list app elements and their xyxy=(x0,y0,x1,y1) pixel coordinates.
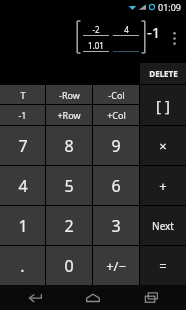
button[interactable]: -Row xyxy=(46,85,92,104)
staticText: -Row xyxy=(59,89,80,101)
button[interactable]: +/− xyxy=(93,246,139,285)
staticText: -Col xyxy=(108,89,125,101)
button[interactable]: 9 xyxy=(93,126,139,165)
staticText: 0 xyxy=(64,255,74,277)
staticText: T xyxy=(20,89,26,101)
staticText: 1 xyxy=(18,215,28,237)
staticText: 6 xyxy=(111,175,121,197)
button[interactable]: = xyxy=(140,246,186,285)
button[interactable]: 4 xyxy=(0,166,45,205)
staticText: +Row xyxy=(57,109,81,121)
button[interactable]: -Col xyxy=(93,85,139,104)
button[interactable]: 1.01 xyxy=(83,39,109,51)
staticText: 7 xyxy=(18,135,28,157)
staticText: -2 xyxy=(92,24,100,35)
button[interactable]: -2 xyxy=(83,23,109,35)
button[interactable]: 1 xyxy=(0,206,45,245)
staticText: 1.01 xyxy=(88,40,104,51)
button[interactable]: × xyxy=(140,126,186,165)
button[interactable]: More options xyxy=(166,23,182,53)
button[interactable]: 2 xyxy=(46,206,92,245)
button[interactable]: Next xyxy=(140,206,186,245)
button[interactable]: Recent apps xyxy=(128,285,174,310)
button[interactable]: . xyxy=(0,246,45,285)
button[interactable]: T xyxy=(0,85,45,104)
staticText: Next xyxy=(152,219,174,233)
staticText: +Col xyxy=(107,109,126,121)
button[interactable]: 6 xyxy=(93,166,139,205)
button[interactable]: Back xyxy=(12,285,58,310)
staticText: 9 xyxy=(111,135,121,157)
button[interactable]: Home xyxy=(70,285,116,310)
staticText: +/− xyxy=(106,257,126,275)
staticText: 5 xyxy=(64,175,74,197)
staticText: . xyxy=(20,255,25,277)
staticText: = xyxy=(159,257,167,275)
staticText: DELETE xyxy=(149,68,178,79)
staticText: 01:09 xyxy=(158,1,182,13)
button[interactable]: DELETE xyxy=(140,63,186,84)
button[interactable]: 8 xyxy=(46,126,92,165)
button[interactable]: 5 xyxy=(46,166,92,205)
staticText: + xyxy=(159,177,167,195)
staticText: 2 xyxy=(64,215,74,237)
staticText: -1 xyxy=(147,22,161,42)
button[interactable]: +Col xyxy=(93,105,139,125)
staticText: -1 xyxy=(18,109,27,121)
button[interactable]: 7 xyxy=(0,126,45,165)
staticText: 4 xyxy=(124,24,129,35)
staticText: × xyxy=(159,137,167,155)
button[interactable]: +Row xyxy=(46,105,92,125)
staticText: 4 xyxy=(18,175,28,197)
button[interactable]: 0 xyxy=(46,246,92,285)
button[interactable]: 4 xyxy=(113,23,139,35)
staticText: 3 xyxy=(111,215,121,237)
button[interactable]: + xyxy=(140,166,186,205)
staticText: 8 xyxy=(64,135,74,157)
button[interactable]: [ ] xyxy=(140,85,186,125)
button[interactable]: 3 xyxy=(93,206,139,245)
staticText: [ ] xyxy=(156,95,170,115)
button[interactable]: -1 xyxy=(0,105,45,125)
